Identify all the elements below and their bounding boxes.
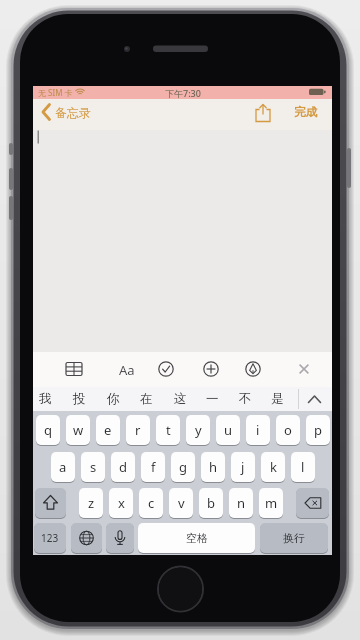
staticText: p bbox=[314, 421, 322, 439]
button[interactable]: 是 bbox=[267, 387, 287, 411]
staticText: 我 bbox=[39, 391, 52, 407]
staticText: a bbox=[59, 458, 67, 476]
button[interactable]: 投 bbox=[69, 387, 89, 411]
button[interactable]: 在 bbox=[136, 387, 156, 411]
button[interactable]: e bbox=[96, 415, 120, 445]
button[interactable]: i bbox=[246, 415, 270, 445]
staticText: d bbox=[119, 458, 127, 476]
button[interactable]: d bbox=[111, 452, 135, 482]
button[interactable]: z bbox=[79, 488, 103, 518]
staticText: 你 bbox=[107, 391, 120, 407]
staticText: w bbox=[73, 421, 84, 439]
button[interactable]: 空格 bbox=[138, 523, 255, 553]
button[interactable]: l bbox=[291, 452, 315, 482]
button[interactable] bbox=[106, 523, 134, 553]
staticText: x bbox=[118, 494, 125, 512]
staticText: 这 bbox=[174, 391, 187, 407]
button[interactable]: x bbox=[109, 488, 133, 518]
staticText: 投 bbox=[73, 391, 86, 407]
staticText: g bbox=[179, 458, 187, 476]
button[interactable]: t bbox=[156, 415, 180, 445]
staticText: o bbox=[284, 421, 292, 439]
staticText: c bbox=[148, 494, 155, 512]
staticText: 完成 bbox=[294, 105, 317, 119]
button[interactable]: Aa bbox=[115, 352, 139, 387]
button[interactable]: m bbox=[259, 488, 283, 518]
button[interactable]: n bbox=[229, 488, 253, 518]
staticText: 不 bbox=[239, 391, 252, 407]
staticText: k bbox=[270, 458, 277, 476]
staticText: j bbox=[241, 458, 245, 476]
button[interactable]: b bbox=[199, 488, 223, 518]
button[interactable]: c bbox=[139, 488, 163, 518]
staticText: 123 bbox=[41, 531, 59, 545]
staticText: f bbox=[151, 458, 156, 476]
staticText: 空格 bbox=[186, 531, 208, 545]
button[interactable] bbox=[35, 488, 66, 518]
button[interactable]: k bbox=[261, 452, 285, 482]
button[interactable]: 备忘录 bbox=[51, 99, 95, 125]
staticText: i bbox=[256, 421, 260, 439]
staticText: Aa bbox=[119, 361, 135, 379]
staticText: 下午7:30 bbox=[165, 87, 201, 99]
button[interactable]: r bbox=[126, 415, 150, 445]
button[interactable]: u bbox=[216, 415, 240, 445]
staticText: q bbox=[44, 421, 52, 439]
staticText: h bbox=[209, 458, 218, 476]
button[interactable]: q bbox=[36, 415, 60, 445]
staticText: e bbox=[104, 421, 112, 439]
button[interactable]: o bbox=[276, 415, 300, 445]
button[interactable]: g bbox=[171, 452, 195, 482]
button[interactable]: 一 bbox=[202, 387, 222, 411]
staticText: z bbox=[88, 494, 95, 512]
staticText: 备忘录 bbox=[55, 105, 91, 120]
button[interactable]: 123 bbox=[34, 523, 66, 553]
button[interactable] bbox=[71, 523, 102, 553]
staticText: y bbox=[195, 421, 202, 439]
staticText: m bbox=[265, 494, 278, 512]
staticText: 一 bbox=[206, 391, 219, 407]
staticText: l bbox=[301, 458, 305, 476]
staticText: v bbox=[178, 494, 185, 512]
button[interactable]: f bbox=[141, 452, 165, 482]
button[interactable]: 我 bbox=[35, 387, 55, 411]
button[interactable]: 这 bbox=[170, 387, 190, 411]
button[interactable]: 完成 bbox=[285, 99, 325, 125]
staticText: n bbox=[237, 494, 246, 512]
button[interactable]: h bbox=[201, 452, 225, 482]
staticText: r bbox=[135, 421, 141, 439]
button[interactable]: p bbox=[306, 415, 330, 445]
staticText: s bbox=[90, 458, 97, 476]
button[interactable]: s bbox=[81, 452, 105, 482]
staticText: 在 bbox=[140, 391, 153, 407]
button[interactable]: 不 bbox=[235, 387, 255, 411]
button[interactable]: j bbox=[231, 452, 255, 482]
staticText: 无 SIM 卡 bbox=[38, 87, 73, 98]
button[interactable] bbox=[296, 488, 329, 518]
button[interactable]: 你 bbox=[103, 387, 123, 411]
button[interactable]: 换行 bbox=[260, 523, 328, 553]
button[interactable]: a bbox=[51, 452, 75, 482]
staticText: 换行 bbox=[283, 531, 305, 545]
staticText: b bbox=[207, 494, 215, 512]
staticText: u bbox=[224, 421, 233, 439]
staticText: 是 bbox=[271, 391, 284, 407]
button[interactable]: v bbox=[169, 488, 193, 518]
button[interactable]: w bbox=[66, 415, 90, 445]
button[interactable]: y bbox=[186, 415, 210, 445]
staticText: t bbox=[166, 421, 171, 439]
